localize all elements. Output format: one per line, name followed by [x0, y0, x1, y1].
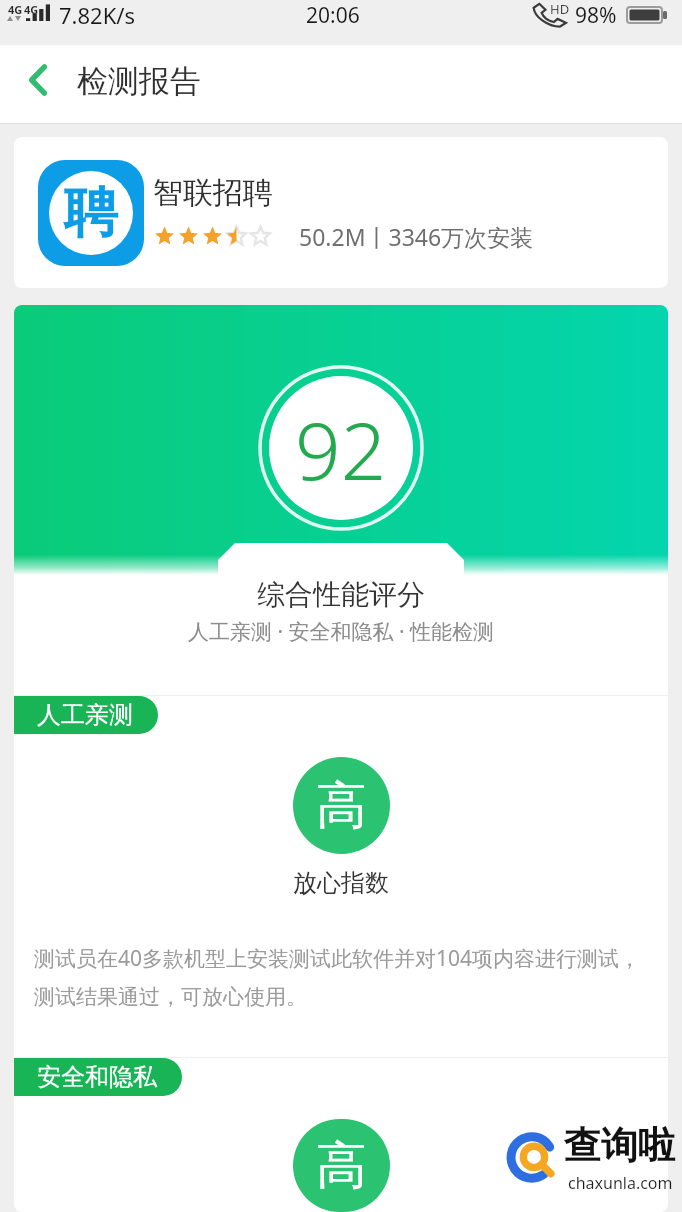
staticText: 放心指数: [14, 868, 668, 898]
staticText: 人工亲测: [37, 700, 133, 730]
button[interactable]: Back: [0, 45, 72, 124]
button[interactable]: 高: [293, 1119, 390, 1212]
staticText: 20:06: [306, 1, 360, 30]
button[interactable]: 聘: [14, 137, 668, 288]
staticText: 高: [316, 774, 367, 838]
staticText: 4G: [24, 2, 39, 17]
button[interactable]: 高: [293, 757, 390, 854]
staticText: 智联招聘: [153, 174, 273, 212]
staticText: chaxunla.com: [568, 1172, 673, 1194]
staticText: 检测报告: [77, 62, 201, 101]
staticText: 人工亲测 · 安全和隐私 · 性能检测: [14, 617, 668, 646]
button[interactable]: 人工亲测: [14, 696, 158, 734]
staticText: 50.2M丨3346万次安装: [299, 221, 534, 252]
staticText: HD: [550, 0, 570, 18]
staticText: 4G: [8, 2, 23, 17]
staticText: 安全和隐私: [37, 1062, 157, 1092]
staticText: 聘: [64, 179, 118, 247]
button[interactable]: 安全和隐私: [14, 1058, 182, 1096]
staticText: 98%: [575, 1, 617, 30]
staticText: 92: [295, 394, 387, 503]
staticText: 测试员在40多款机型上安装测试此软件并对104项内容进行测试， 测试结果通过，可…: [34, 944, 648, 1011]
staticText: 综合性能评分: [14, 577, 668, 612]
staticText: 7.82K/s: [59, 0, 135, 30]
staticText: 查询啦: [564, 1122, 675, 1169]
staticText: 高: [316, 1134, 367, 1198]
